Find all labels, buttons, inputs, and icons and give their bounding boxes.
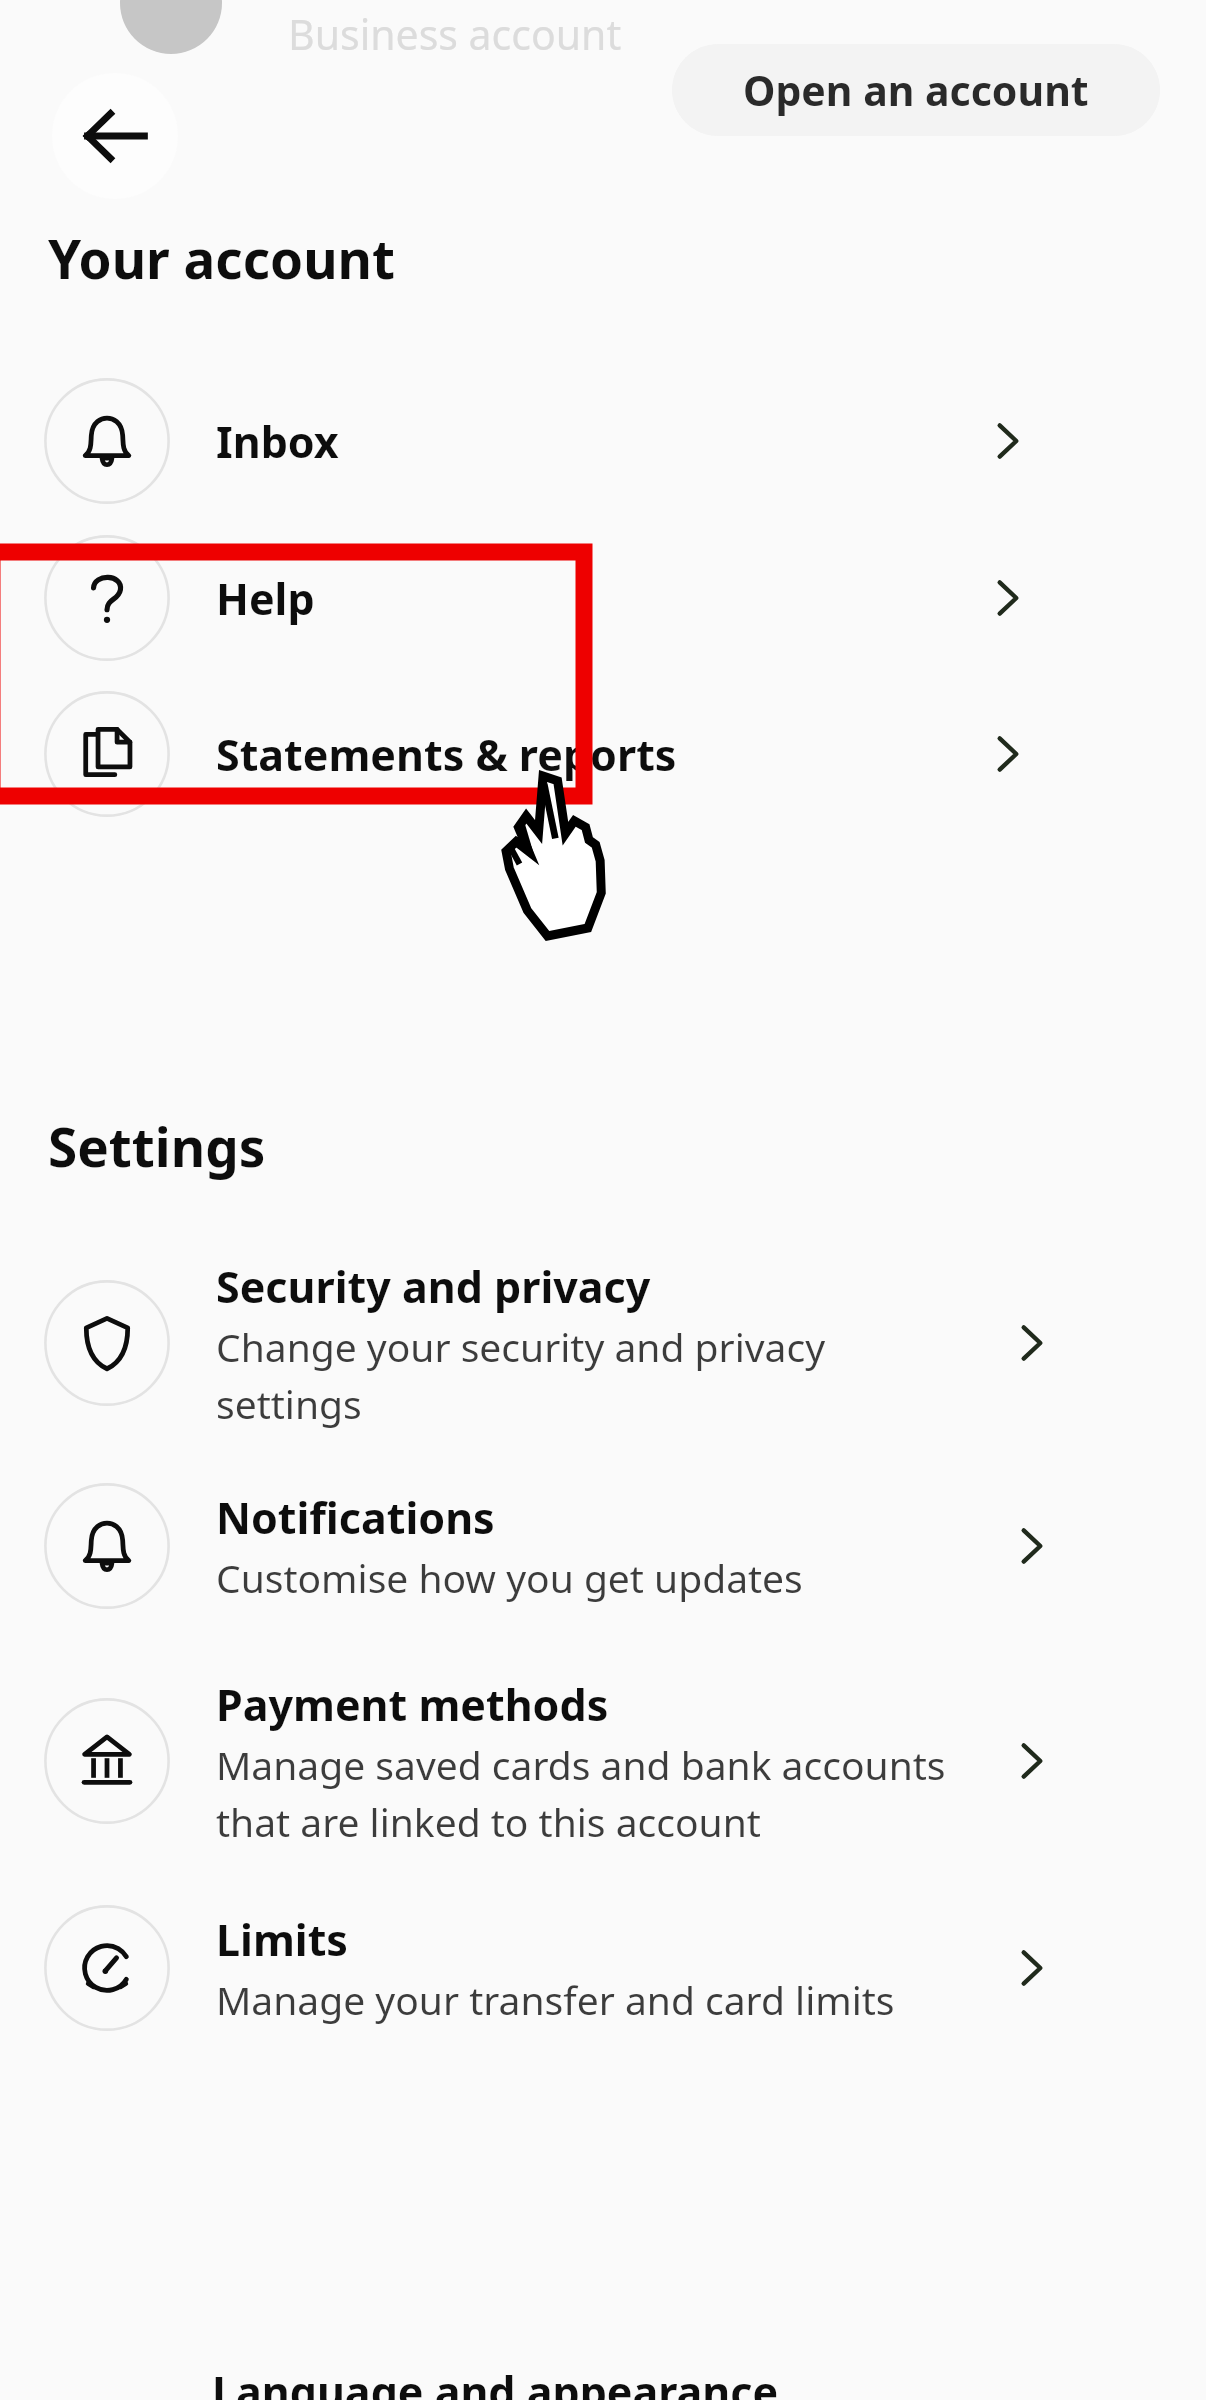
staticText: Limits	[216, 1910, 348, 1969]
staticText: Your account	[48, 222, 396, 294]
button[interactable]: Notifications	[0, 1470, 1206, 1622]
staticText: Payment methods	[216, 1675, 609, 1734]
staticText: Inbox	[216, 412, 976, 471]
button[interactable]: Statements & reports	[0, 691, 1206, 817]
staticText: Settings	[48, 1110, 266, 1182]
staticText: that are linked to this account	[216, 1795, 761, 1848]
staticText: Language and appearance	[212, 2362, 779, 2400]
button[interactable]: Open an account	[672, 44, 1160, 136]
staticText: Statements & reports	[216, 725, 976, 784]
staticText: Manage saved cards and bank accounts	[216, 1738, 946, 1791]
staticText: settings	[216, 1377, 362, 1430]
button[interactable]: Security and privacy	[0, 1240, 1206, 1446]
button[interactable]: Payment methods	[0, 1658, 1206, 1864]
staticText: Help	[216, 569, 976, 628]
staticText: Customise how you get updates	[216, 1551, 803, 1604]
staticText: Open an account	[743, 62, 1089, 118]
staticText: Business account	[288, 6, 622, 62]
staticText: Change your security and privacy	[216, 1320, 826, 1373]
button[interactable]: Help	[0, 535, 1206, 661]
button[interactable]: Inbox	[0, 378, 1206, 504]
staticText: Manage your transfer and card limits	[216, 1973, 895, 2026]
staticText: Notifications	[216, 1488, 495, 1547]
button[interactable]: Back	[52, 73, 178, 199]
button[interactable]: Limits	[0, 1892, 1206, 2044]
staticText: Security and privacy	[216, 1257, 651, 1316]
